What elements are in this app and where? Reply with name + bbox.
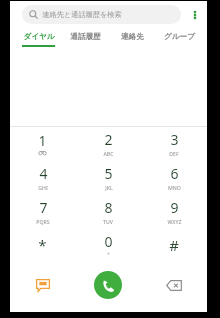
staticText: ダイヤル (23, 32, 55, 42)
button[interactable]: 8 (75, 195, 141, 229)
staticText: 連絡先と通話履歴を検索 (42, 10, 122, 19)
staticText: 4 (39, 164, 48, 183)
staticText: ABC (103, 150, 114, 157)
button[interactable]: グループ (156, 28, 203, 51)
staticText: # (169, 235, 179, 255)
staticText: 1 (38, 131, 47, 150)
button[interactable]: ダイヤル (14, 28, 62, 51)
staticText: 0 (104, 232, 113, 251)
button[interactable]: 通話履歴 (62, 28, 109, 51)
staticText: 8 (104, 198, 113, 217)
staticText: WXYZ (167, 218, 182, 225)
staticText: MNO (168, 184, 181, 191)
staticText: JKL (105, 184, 113, 191)
button[interactable]: 2 (75, 127, 141, 161)
staticText: 3 (170, 130, 179, 149)
staticText: 2 (104, 130, 113, 149)
staticText: 連絡先 (121, 32, 144, 42)
button[interactable]: 3 (141, 127, 207, 161)
staticText: DEF (169, 150, 179, 157)
staticText: TUV (103, 218, 113, 225)
button[interactable]: 5 (75, 161, 141, 195)
button[interactable]: 7 (10, 195, 75, 229)
staticText: + (107, 251, 110, 258)
staticText: 7 (39, 198, 48, 217)
staticText: * (38, 235, 47, 255)
button[interactable]: 連絡先と通話履歴を検索 (22, 5, 181, 24)
button[interactable]: More options (187, 7, 203, 23)
staticText: PQRS (36, 218, 50, 225)
staticText: 9 (170, 198, 179, 217)
button[interactable]: Backspace (141, 263, 207, 307)
button[interactable]: 6 (141, 161, 207, 195)
button[interactable]: * (10, 229, 75, 263)
button[interactable]: Send message (10, 263, 75, 307)
staticText: GHI (38, 184, 48, 191)
button[interactable]: 1 (10, 127, 75, 161)
staticText: 6 (170, 164, 179, 183)
button[interactable]: Call (94, 271, 122, 299)
staticText: 5 (104, 164, 113, 183)
button[interactable]: # (141, 229, 207, 263)
button[interactable]: 0 (75, 229, 141, 263)
button[interactable]: 連絡先 (109, 28, 156, 51)
button[interactable]: 4 (10, 161, 75, 195)
staticText: 通話履歴 (70, 32, 101, 42)
button[interactable]: 9 (141, 195, 207, 229)
staticText: グループ (164, 32, 195, 42)
